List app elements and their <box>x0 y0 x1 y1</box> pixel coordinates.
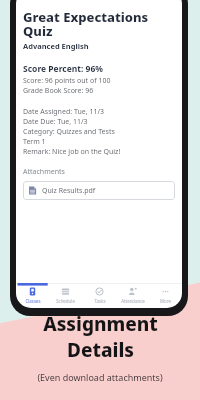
staticText: Remark: Nice job on the Quiz! <box>23 147 121 157</box>
staticText: Attendance <box>121 298 145 304</box>
staticText: Grade Book Score: 96 <box>23 86 94 96</box>
staticText: Date Assigned: Tue, 11/3 <box>23 107 105 117</box>
button[interactable]: Schedule <box>49 283 82 308</box>
staticText: (Even download attachments) <box>37 371 163 383</box>
staticText: Advanced English <box>23 41 89 51</box>
staticText: Score: 96 points out of 100 <box>23 76 111 86</box>
button[interactable]: Classes <box>16 283 49 308</box>
staticText: Details <box>67 337 134 363</box>
button[interactable]: Quiz Results.pdf <box>23 181 175 200</box>
staticText: Schedule <box>56 298 75 304</box>
other: Classes <box>28 287 37 296</box>
staticText: Classes <box>25 298 41 304</box>
other: Attendance <box>128 287 137 296</box>
staticText: Attachments <box>23 167 65 177</box>
other: Tasks <box>95 287 104 296</box>
staticText: Quiz Results.pdf <box>42 186 96 196</box>
button[interactable]: More <box>149 283 182 308</box>
other: Schedule <box>61 287 70 296</box>
other: More <box>161 287 170 296</box>
button[interactable]: Attendance <box>116 283 149 308</box>
staticText: Category: Quizzes and Tests <box>23 127 115 137</box>
staticText: Term 1 <box>23 137 46 147</box>
staticText: Score Percent: 96% <box>23 63 103 75</box>
staticText: Assignment <box>43 311 158 337</box>
staticText: Tasks <box>94 298 106 304</box>
staticText: More <box>160 298 171 304</box>
staticText: Date Due: Tue, 11/3 <box>23 117 88 127</box>
button[interactable]: Tasks <box>83 283 116 308</box>
staticText: Great Expectations Quiz <box>23 8 175 40</box>
